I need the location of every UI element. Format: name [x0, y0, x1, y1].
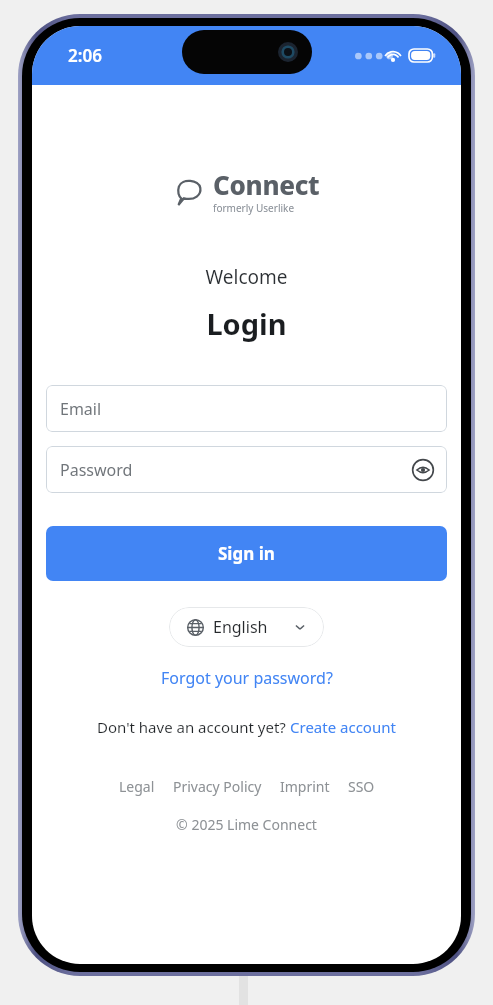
staticText: formerly Userlike [213, 201, 295, 215]
button[interactable]: Sign in [46, 526, 447, 581]
staticText: © 2025 Lime Connect [32, 815, 461, 834]
button[interactable]: Email [46, 385, 447, 432]
button[interactable]: Legal [119, 775, 155, 798]
button[interactable]: Forgot your password? [157, 665, 337, 691]
staticText: 2:06 [68, 44, 102, 67]
staticText: Don't have an account yet? [97, 717, 290, 737]
button[interactable]: Password [46, 446, 447, 493]
button[interactable]: SSO [348, 775, 375, 798]
staticText: Password [60, 459, 133, 481]
staticText: Connect [213, 167, 320, 202]
button[interactable]: Create account [290, 717, 396, 737]
staticText: Imprint [280, 777, 330, 796]
staticText: Legal [119, 777, 155, 796]
staticText: Forgot your password? [161, 667, 333, 689]
staticText: Welcome [32, 264, 461, 290]
staticText: Privacy Policy [173, 777, 262, 796]
staticText: Email [60, 398, 102, 420]
button[interactable]: Show password [411, 458, 435, 482]
button[interactable]: English [169, 607, 324, 647]
staticText: SSO [348, 777, 375, 796]
staticText: Login [32, 304, 461, 343]
staticText: Sign in [218, 542, 275, 565]
button[interactable]: Privacy Policy [173, 775, 262, 798]
button[interactable]: Imprint [280, 775, 330, 798]
staticText: English [213, 616, 268, 638]
staticText: Create account [290, 717, 396, 737]
